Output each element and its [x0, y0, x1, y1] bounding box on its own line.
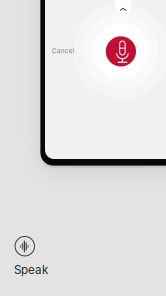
button[interactable]: Speak [0, 0, 166, 296]
staticText: Speak [14, 263, 48, 277]
button[interactable]: Collapse [115, 0, 131, 14]
button[interactable]: Cancel [52, 47, 75, 55]
button[interactable]: Stop recording [106, 36, 136, 66]
staticText: Cancel [52, 47, 75, 55]
